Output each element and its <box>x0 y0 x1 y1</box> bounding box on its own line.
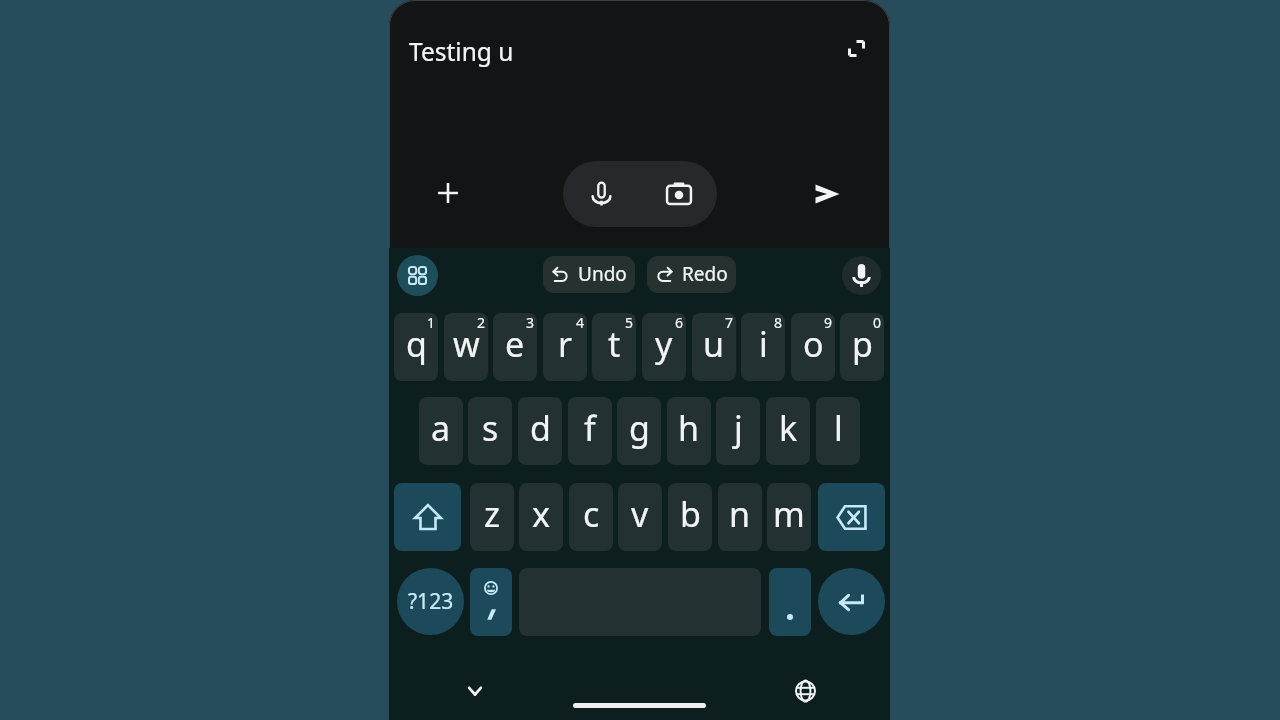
staticText: e <box>505 321 525 367</box>
button[interactable]: u <box>692 313 736 381</box>
button[interactable]: n <box>718 483 762 551</box>
button[interactable]: Emoji <box>470 568 512 636</box>
button[interactable]: h <box>667 397 711 465</box>
staticText: f <box>584 405 596 451</box>
staticText: i <box>759 321 768 367</box>
button[interactable]: Undo <box>543 256 635 293</box>
staticText: 1 <box>427 313 436 332</box>
staticText: v <box>631 491 649 537</box>
button[interactable]: b <box>668 483 712 551</box>
button[interactable]: Shift <box>394 483 461 551</box>
staticText: r <box>558 321 573 367</box>
staticText: w <box>453 321 480 367</box>
button[interactable]: Toolbar <box>397 255 438 296</box>
button[interactable]: p <box>840 313 884 381</box>
button[interactable]: Expand <box>838 30 874 66</box>
button[interactable]: Period <box>769 568 811 636</box>
staticText: l <box>834 405 843 451</box>
button[interactable]: a <box>419 397 463 465</box>
staticText: c <box>583 491 600 537</box>
button[interactable]: x <box>519 483 563 551</box>
button[interactable]: Voice message <box>563 161 640 227</box>
button[interactable]: Enter <box>818 568 885 635</box>
button[interactable]: f <box>568 397 612 465</box>
staticText: u <box>703 321 725 367</box>
staticText: 4 <box>576 313 585 332</box>
button[interactable]: m <box>767 483 811 551</box>
button[interactable]: t <box>592 313 636 381</box>
button[interactable]: Backspace <box>818 483 885 551</box>
button[interactable]: e <box>493 313 537 381</box>
staticText: h <box>678 405 700 451</box>
button[interactable]: i <box>741 313 785 381</box>
staticText: 8 <box>774 313 783 332</box>
staticText: 6 <box>675 313 684 332</box>
button[interactable]: o <box>791 313 835 381</box>
button[interactable]: Add attachment <box>426 171 470 215</box>
button[interactable]: y <box>642 313 686 381</box>
button[interactable]: Voice typing <box>842 256 881 295</box>
button[interactable]: v <box>618 483 662 551</box>
button[interactable]: r <box>543 313 587 381</box>
staticText: o <box>803 321 824 367</box>
staticText: 7 <box>725 313 734 332</box>
staticText: Undo <box>578 261 627 287</box>
button[interactable]: k <box>766 397 810 465</box>
button[interactable]: ?123 <box>397 568 464 635</box>
button[interactable]: j <box>716 397 760 465</box>
staticText: k <box>779 405 798 451</box>
staticText: 0 <box>873 313 882 332</box>
staticText: q <box>406 321 427 367</box>
button[interactable]: z <box>470 483 514 551</box>
button[interactable]: w <box>444 313 488 381</box>
button[interactable]: Send <box>806 173 848 215</box>
staticText: 3 <box>526 313 535 332</box>
staticText: z <box>484 491 500 537</box>
button[interactable]: g <box>617 397 661 465</box>
staticText: n <box>729 491 751 537</box>
staticText: d <box>530 405 551 451</box>
button[interactable]: Redo <box>647 256 736 293</box>
staticText: Redo <box>682 261 728 287</box>
staticText: p <box>852 321 873 367</box>
staticText: a <box>431 405 451 451</box>
staticText: s <box>482 405 499 451</box>
button[interactable]: Change language <box>786 672 824 710</box>
staticText: 2 <box>477 313 486 332</box>
button[interactable]: s <box>468 397 512 465</box>
staticText: m <box>773 491 805 537</box>
button[interactable]: c <box>569 483 613 551</box>
button[interactable]: Camera <box>640 161 717 227</box>
staticText: Testing u <box>409 35 514 68</box>
staticText: t <box>608 321 621 367</box>
button[interactable]: d <box>518 397 562 465</box>
staticText: ?123 <box>408 587 454 616</box>
staticText: y <box>655 321 673 367</box>
staticText: g <box>629 405 650 451</box>
staticText: 9 <box>824 313 833 332</box>
staticText: x <box>532 491 550 537</box>
button[interactable]: Hide keyboard <box>456 672 494 710</box>
button[interactable]: l <box>816 397 860 465</box>
staticText: j <box>734 405 743 451</box>
staticText: b <box>680 491 701 537</box>
staticText: 5 <box>625 313 634 332</box>
button[interactable]: q <box>394 313 438 381</box>
